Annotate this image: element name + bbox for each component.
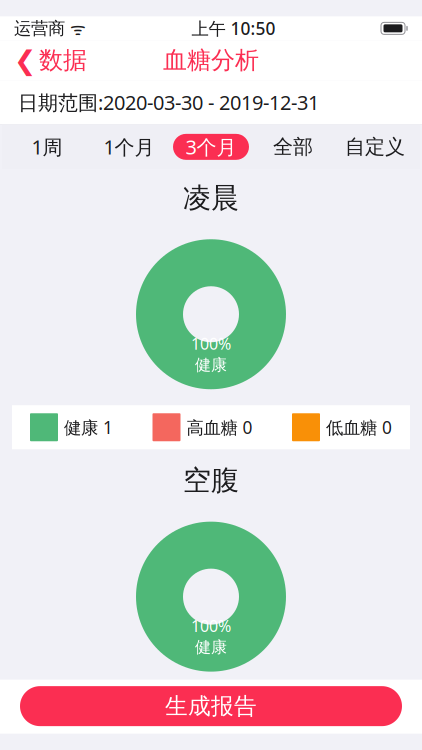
button[interactable]: 全部	[252, 125, 334, 169]
staticText: 日期范围:2020-03-30 - 2019-12-31	[18, 89, 319, 116]
staticText: 100%	[191, 333, 231, 354]
staticText: 100%	[191, 615, 231, 636]
staticText: 上午 10:50	[191, 17, 275, 40]
staticText: 运营商	[14, 18, 65, 39]
staticText: 高血糖 0	[186, 416, 252, 439]
staticText: 全部	[273, 135, 313, 159]
staticText: 空腹	[183, 463, 239, 498]
button[interactable]: ❮	[0, 40, 101, 80]
staticText: 数据	[39, 46, 87, 75]
staticText: 凌晨	[183, 181, 239, 215]
staticText: ᯤ	[65, 17, 86, 40]
button[interactable]: 1个月	[88, 125, 170, 169]
button[interactable]: 自定义	[334, 125, 416, 169]
staticText: ❮	[14, 45, 36, 75]
staticText: 自定义	[345, 135, 405, 159]
staticText: 1个月	[103, 134, 154, 160]
staticText: 生成报告	[165, 692, 257, 720]
button[interactable]: 1周	[6, 125, 88, 169]
button[interactable]: 生成报告	[20, 686, 402, 726]
button[interactable]: 3个月	[170, 125, 252, 169]
staticText: 健康 1	[64, 416, 113, 439]
staticText: 健康	[195, 355, 227, 375]
staticText: 血糖分析	[163, 46, 259, 75]
staticText: 3个月	[185, 134, 236, 160]
staticText: 1周	[31, 134, 62, 160]
staticText: 健康	[195, 637, 227, 657]
staticText: 低血糖 0	[326, 416, 392, 439]
